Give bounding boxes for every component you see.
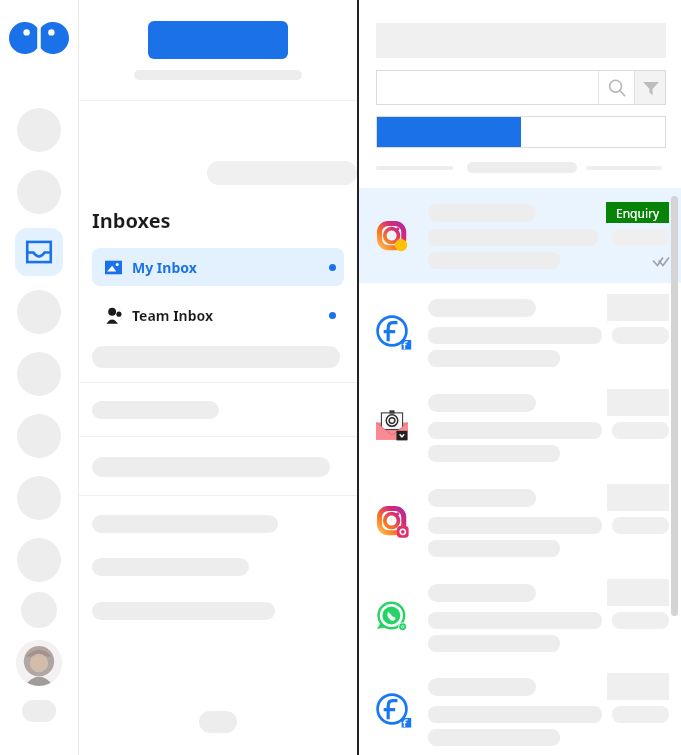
button[interactable] [148, 21, 288, 59]
button[interactable] [359, 568, 681, 663]
button[interactable]: Team Inbox [92, 296, 344, 334]
staticText: Inboxes [92, 207, 171, 234]
button[interactable]: Navigation item [17, 476, 61, 520]
button[interactable]: Navigation item [17, 290, 61, 334]
button[interactable]: Navigation item [17, 170, 61, 214]
button[interactable]: Home [8, 20, 70, 56]
button[interactable] [359, 283, 681, 378]
button[interactable] [521, 116, 666, 148]
button[interactable] [359, 663, 681, 755]
button[interactable]: Navigation item [17, 538, 61, 582]
button[interactable]: Filter [635, 70, 666, 105]
button[interactable]: Navigation item [17, 108, 61, 152]
button[interactable]: My Inbox [92, 248, 344, 286]
button[interactable]: Navigation item [17, 414, 61, 458]
button[interactable]: Search [598, 70, 635, 105]
button[interactable]: Navigation item [17, 352, 61, 396]
button[interactable]: Navigation item [21, 592, 57, 628]
button[interactable] [359, 378, 681, 473]
staticText: Enquiry [616, 205, 660, 221]
button[interactable]: Navigation item [22, 700, 56, 722]
staticText: Team Inbox [132, 306, 214, 325]
button[interactable] [359, 473, 681, 568]
staticText: My Inbox [132, 258, 197, 277]
button[interactable]: Enquiry [359, 188, 681, 283]
button[interactable]: Inbox [15, 228, 63, 276]
button[interactable] [376, 116, 521, 148]
button[interactable] [376, 70, 598, 105]
button[interactable]: Profile [16, 640, 62, 686]
